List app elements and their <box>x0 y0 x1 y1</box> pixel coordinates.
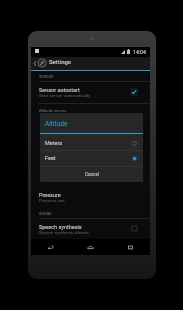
staticText: Meters <box>45 140 132 146</box>
staticText: Start sensor automatically <box>39 93 91 98</box>
staticText: Cancel <box>85 172 99 177</box>
staticText: Pressure <box>39 192 61 198</box>
staticText: Altitude sensor <box>39 108 67 113</box>
staticText: Settings <box>49 58 71 65</box>
button[interactable]: Speech synthesis <box>31 221 150 238</box>
staticText: Pressure unit <box>39 198 65 203</box>
button[interactable]: Home <box>70 239 110 255</box>
other: Navigate up <box>34 61 36 66</box>
button[interactable] <box>31 57 150 71</box>
button[interactable]: Meters <box>40 134 143 150</box>
button[interactable]: Pressure <box>31 190 150 207</box>
staticText: Speech synthesis <box>39 224 82 230</box>
button[interactable]: Cancel <box>40 167 143 182</box>
staticText: Speech synthesis altitude <box>39 230 89 235</box>
button[interactable]: Back <box>31 239 70 255</box>
staticText: SENSOR <box>39 74 54 78</box>
staticText: Feet <box>45 155 132 161</box>
staticText: 14:04 <box>133 49 146 55</box>
button[interactable]: Sensor autostart <box>31 83 150 102</box>
staticText: SOUND <box>39 211 52 215</box>
button[interactable]: Recent apps <box>110 239 150 255</box>
staticText: Altitude <box>45 120 68 128</box>
button[interactable]: Feet <box>40 151 143 166</box>
staticText: Sensor autostart <box>39 87 80 93</box>
